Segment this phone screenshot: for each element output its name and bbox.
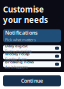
staticText: Pick what matters: [5, 37, 36, 42]
button[interactable]: Continue: [3, 75, 61, 86]
staticText: Notifications: [5, 29, 38, 36]
button[interactable]: Weekly recap: [3, 53, 61, 59]
staticText: As it happens: [5, 64, 28, 69]
staticText: Daily digest: [5, 43, 28, 48]
staticText: Breaking news: [5, 59, 34, 64]
button[interactable]: Notifications: [3, 29, 61, 42]
button[interactable]: Breaking news: [3, 61, 61, 67]
staticText: Sunday 9 am: [5, 56, 27, 61]
staticText: Every morning: [5, 48, 31, 53]
button[interactable]: Daily digest: [3, 45, 61, 51]
staticText: Customise: [3, 4, 44, 15]
staticText: your needs: [3, 15, 48, 25]
staticText: Weekly recap: [5, 51, 30, 56]
staticText: Continue: [21, 77, 43, 84]
